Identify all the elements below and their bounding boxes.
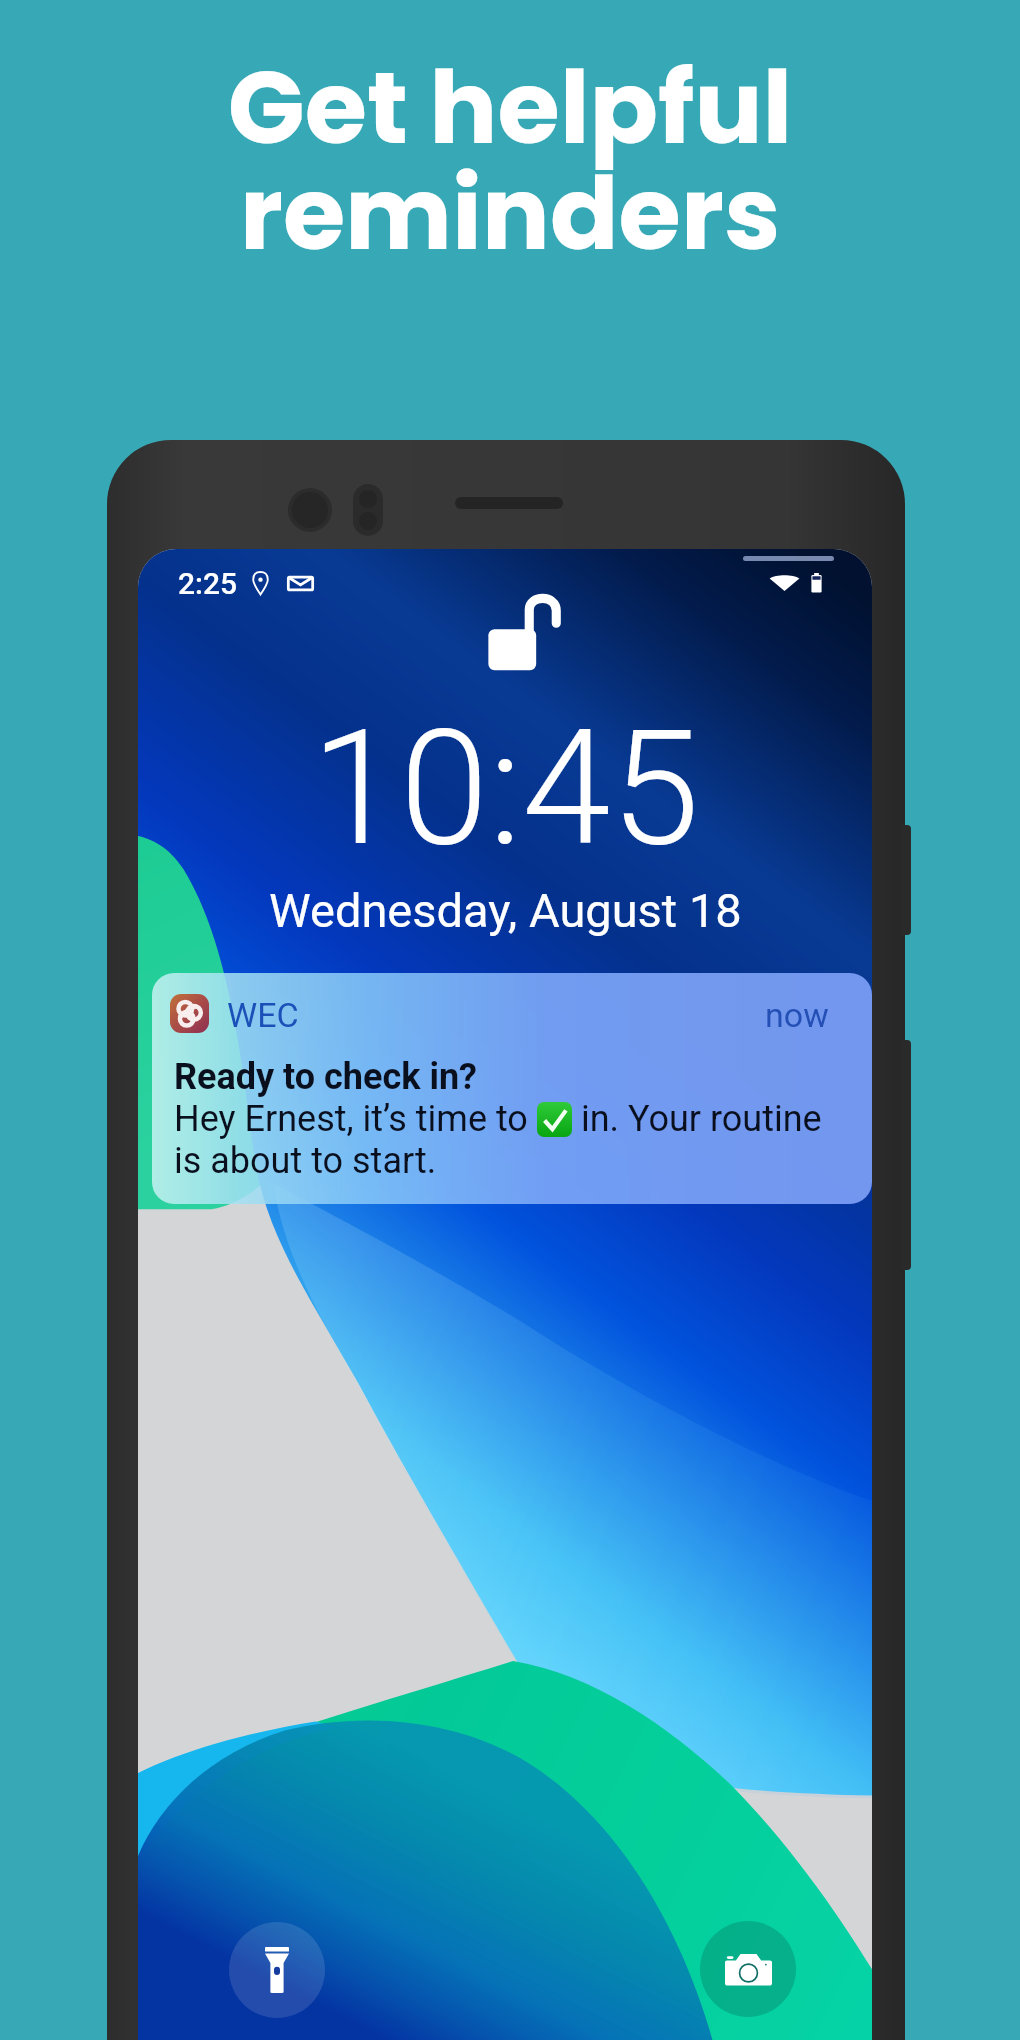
staticText: in. Your routine bbox=[572, 1098, 822, 1140]
staticText: Wednesday, August 18 bbox=[269, 883, 742, 938]
staticText: Ready to check in? bbox=[174, 1056, 477, 1098]
staticText: WEC bbox=[227, 995, 299, 1035]
staticText: Hey Ernest, it’s time to bbox=[174, 1098, 537, 1140]
staticText: now bbox=[765, 995, 829, 1035]
staticText: Get helpful reminders bbox=[0, 37, 1020, 284]
button[interactable]: Flashlight bbox=[229, 1922, 325, 2018]
staticText: 10:45 bbox=[311, 695, 700, 883]
staticText: 2:25 bbox=[178, 566, 238, 601]
button[interactable]: WEC bbox=[152, 973, 872, 1204]
staticText: is about to start. bbox=[174, 1140, 437, 1182]
button[interactable]: Camera bbox=[700, 1921, 796, 2017]
